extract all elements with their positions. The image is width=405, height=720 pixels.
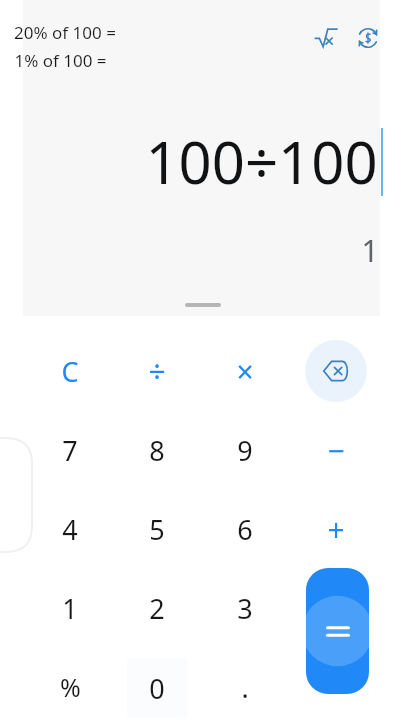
- button[interactable]: −: [296, 419, 376, 481]
- staticText: 3: [237, 590, 253, 627]
- staticText: 8: [149, 432, 165, 469]
- staticText: 6: [237, 511, 253, 548]
- button[interactable]: ×: [205, 340, 285, 402]
- button[interactable]: 6: [205, 498, 285, 560]
- staticText: −: [327, 430, 345, 471]
- staticText: 0: [149, 670, 165, 707]
- button[interactable]: .: [205, 656, 285, 718]
- button[interactable]: 0: [127, 658, 187, 718]
- button[interactable]: 4: [30, 498, 110, 560]
- staticText: 5: [149, 511, 165, 548]
- staticText: 4: [62, 511, 78, 548]
- staticText: C: [61, 353, 79, 390]
- staticText: 20% of 100 =: [14, 21, 116, 44]
- button[interactable]: 7: [30, 419, 110, 481]
- button[interactable]: 8: [117, 419, 197, 481]
- staticText: 7: [62, 432, 78, 469]
- staticText: 1: [62, 590, 78, 627]
- staticText: 1% of 100 =: [14, 49, 107, 72]
- button[interactable]: 2: [117, 577, 197, 639]
- staticText: 2: [149, 590, 165, 627]
- button[interactable]: Square root: [309, 21, 343, 55]
- staticText: ÷: [148, 351, 166, 392]
- button[interactable]: 9: [205, 419, 285, 481]
- button[interactable]: 5: [117, 498, 197, 560]
- button[interactable]: 1: [30, 577, 110, 639]
- staticText: %: [60, 670, 81, 704]
- staticText: 1: [361, 230, 379, 271]
- button[interactable]: 3: [205, 577, 285, 639]
- button[interactable]: Backspace: [305, 340, 367, 402]
- staticText: 100÷100: [145, 122, 378, 201]
- button[interactable]: C: [30, 340, 110, 402]
- button[interactable]: +: [296, 498, 376, 560]
- staticText: ×: [236, 351, 254, 392]
- button[interactable]: ÷: [117, 340, 197, 402]
- button[interactable]: %: [30, 656, 110, 718]
- button[interactable]: Equals: [306, 568, 369, 694]
- staticText: .: [241, 669, 249, 706]
- staticText: 9: [237, 432, 253, 469]
- button[interactable]: Currency converter: [351, 21, 385, 55]
- staticText: +: [327, 509, 345, 550]
